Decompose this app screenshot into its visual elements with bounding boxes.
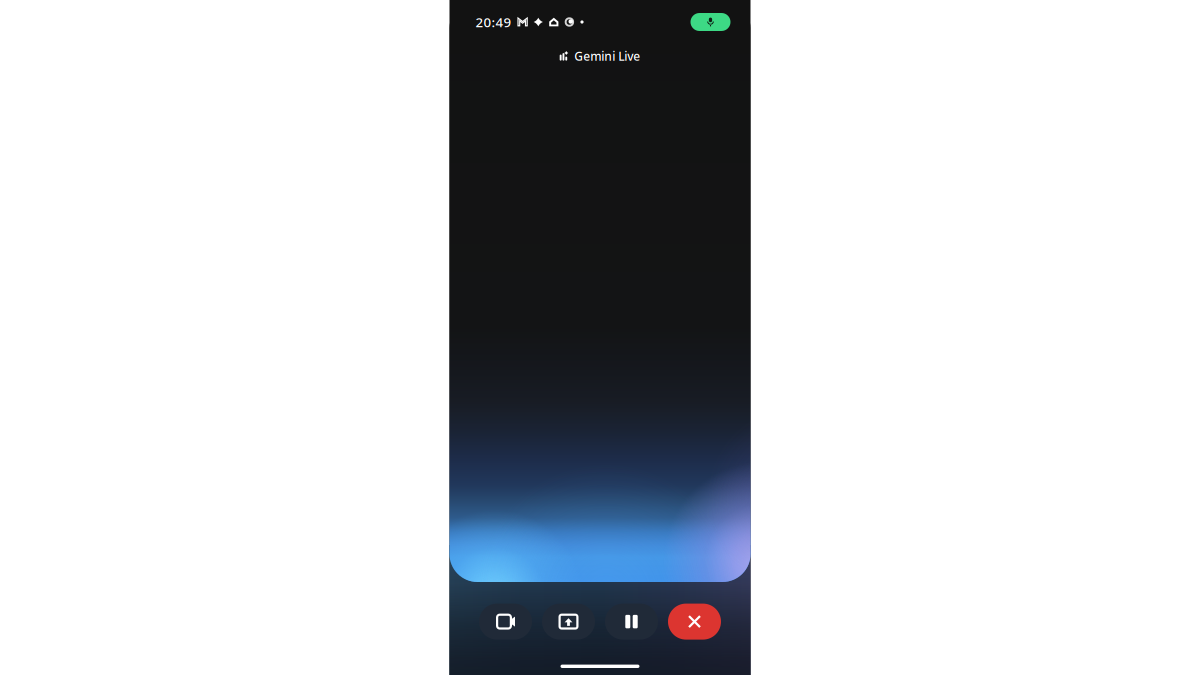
button[interactable]: Share screen <box>542 604 595 640</box>
staticText: 20:49 <box>475 13 511 31</box>
staticText: Gemini Live <box>574 48 640 64</box>
button[interactable]: Turn on camera <box>479 604 532 640</box>
button[interactable]: Pause <box>605 604 658 640</box>
button[interactable]: End session <box>668 604 721 640</box>
button[interactable]: Microphone active <box>690 13 730 31</box>
